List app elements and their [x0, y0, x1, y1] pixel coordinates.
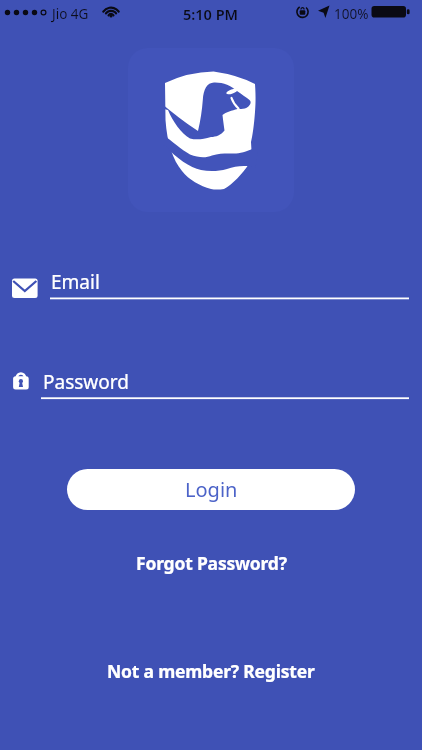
staticText: 100% — [334, 5, 369, 23]
staticText: Login — [185, 476, 238, 503]
button[interactable]: Forgot Password? — [136, 551, 287, 575]
button[interactable]: Not a member? Register — [107, 659, 315, 683]
button[interactable]: Login — [67, 469, 355, 510]
staticText: 5:10 PM — [183, 4, 239, 24]
button[interactable]: Email — [10, 268, 410, 302]
button[interactable]: Password — [10, 368, 410, 402]
staticText: Not a member? Register — [107, 659, 315, 683]
staticText: Jio 4G — [52, 5, 89, 23]
staticText: Password — [43, 369, 129, 395]
staticText: Email — [51, 269, 100, 295]
staticText: Forgot Password? — [136, 551, 287, 575]
